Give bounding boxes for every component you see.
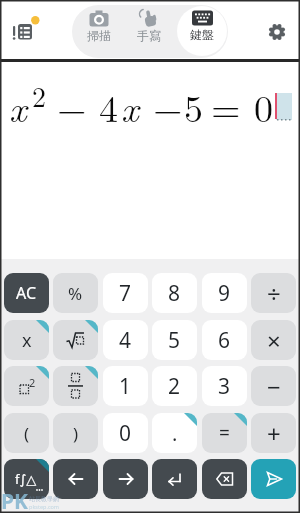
button[interactable]: × xyxy=(251,320,296,360)
button[interactable]: 6 xyxy=(202,320,247,360)
button[interactable] xyxy=(53,459,98,499)
staticText: 0 xyxy=(119,419,132,448)
button[interactable] xyxy=(152,459,197,499)
button[interactable] xyxy=(53,366,98,406)
button[interactable]: 4 xyxy=(103,320,148,360)
staticText: 0 xyxy=(254,79,274,133)
staticText: pkstep.com xyxy=(29,503,60,510)
button[interactable] xyxy=(266,21,288,43)
button[interactable]: 手寫 xyxy=(127,10,171,54)
staticText: x xyxy=(121,79,139,133)
staticText: 2 xyxy=(32,75,47,115)
staticText: 2 xyxy=(168,372,181,401)
staticText: 掃描 xyxy=(87,28,111,43)
button[interactable]: ÷ xyxy=(251,273,296,313)
staticText: AC xyxy=(16,282,37,304)
staticText: − xyxy=(267,370,281,403)
button[interactable]: f∫△ xyxy=(4,459,49,499)
staticText: 6 xyxy=(218,326,231,355)
staticText: × xyxy=(267,324,281,357)
staticText: . xyxy=(172,420,178,447)
button[interactable] xyxy=(8,12,42,48)
button[interactable]: = xyxy=(202,413,247,453)
staticText: 7 xyxy=(119,279,132,308)
staticText: 鍵盤 xyxy=(190,27,214,42)
staticText: ( xyxy=(24,422,30,445)
staticText: + xyxy=(267,417,281,450)
button[interactable]: ( xyxy=(4,413,49,453)
staticText: f∫△ xyxy=(15,470,37,488)
staticText: x xyxy=(9,79,27,133)
staticText: % xyxy=(68,282,83,305)
button[interactable]: 0 xyxy=(103,413,148,453)
button[interactable] xyxy=(103,459,148,499)
button[interactable]: . xyxy=(152,413,197,453)
staticText: 5 xyxy=(184,79,204,133)
staticText: 9 xyxy=(218,279,231,308)
staticText: 站長教學網 xyxy=(29,495,59,503)
button[interactable]: x xyxy=(4,320,49,360)
button[interactable]: 掃描 xyxy=(76,10,121,54)
button[interactable]: 7 xyxy=(103,273,148,313)
staticText: 8 xyxy=(168,279,181,308)
button[interactable]: % xyxy=(53,273,98,313)
button[interactable]: AC xyxy=(4,273,49,313)
button[interactable]: − xyxy=(251,366,296,406)
staticText: ÷ xyxy=(267,277,281,310)
button[interactable]: 5 xyxy=(152,320,197,360)
button[interactable]: 1 xyxy=(103,366,148,406)
button[interactable]: ) xyxy=(53,413,98,453)
button[interactable]: 2 xyxy=(152,366,197,406)
staticText: 手寫 xyxy=(137,28,161,43)
staticText: − xyxy=(57,79,87,133)
button[interactable]: 2 xyxy=(4,366,49,406)
button[interactable]: 8 xyxy=(152,273,197,313)
staticText: 3 xyxy=(218,372,231,401)
button[interactable]: 3 xyxy=(202,366,247,406)
staticText: 4 xyxy=(99,79,119,133)
staticText: = xyxy=(219,420,230,446)
button[interactable]: 鍵盤 xyxy=(180,10,224,54)
staticText: x xyxy=(22,328,32,353)
button[interactable]: 9 xyxy=(202,273,247,313)
staticText: 1 xyxy=(119,372,132,401)
button[interactable] xyxy=(202,459,247,499)
staticText: = xyxy=(211,79,241,133)
button[interactable] xyxy=(251,459,296,499)
button[interactable]: + xyxy=(251,413,296,453)
staticText: 4 xyxy=(119,326,132,355)
button[interactable] xyxy=(53,320,98,360)
staticText: ) xyxy=(73,422,79,445)
staticText: − xyxy=(153,79,183,133)
staticText: 2 xyxy=(29,375,36,390)
staticText: PK xyxy=(1,487,28,513)
staticText: 5 xyxy=(168,326,181,355)
